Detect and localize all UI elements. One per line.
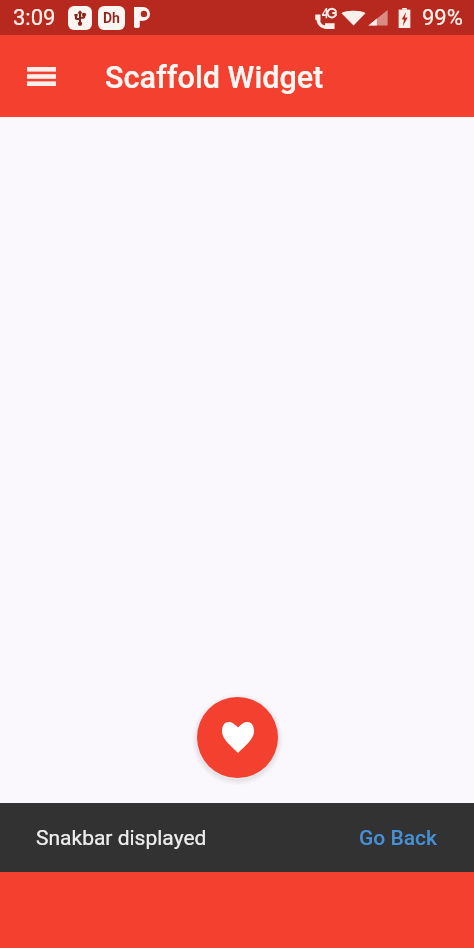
button[interactable]: Favorite [197, 697, 278, 778]
button[interactable]: Menu [15, 50, 67, 102]
staticText: Snakbar displayed [36, 826, 207, 851]
staticText: 99% [422, 5, 463, 31]
staticText: Go Back [359, 826, 438, 851]
staticText: Dh [103, 10, 120, 26]
staticText: Scaffold Widget [105, 60, 324, 96]
button[interactable]: Go Back [359, 825, 438, 850]
staticText: 3:09 [13, 5, 56, 31]
